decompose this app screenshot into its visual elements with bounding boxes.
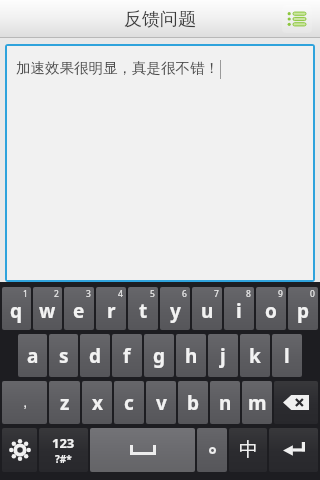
button[interactable]: 加速效果很明显，真是很不错！ bbox=[7, 46, 313, 280]
button[interactable]: h bbox=[176, 334, 206, 377]
staticText: 123 bbox=[52, 434, 75, 452]
staticText: 1 bbox=[23, 288, 28, 300]
button[interactable]: k bbox=[240, 334, 270, 377]
button[interactable]: 4 bbox=[96, 287, 126, 330]
staticText: g bbox=[153, 343, 166, 369]
button[interactable]: b bbox=[178, 381, 208, 424]
button[interactable]: 2 bbox=[33, 287, 62, 330]
staticText: 5 bbox=[150, 288, 155, 300]
staticText: h bbox=[185, 343, 198, 369]
button[interactable]: ， bbox=[2, 381, 47, 424]
button[interactable]: 5 bbox=[128, 287, 158, 330]
staticText: 4 bbox=[118, 288, 123, 300]
staticText: 3 bbox=[86, 288, 91, 300]
button[interactable]: v bbox=[146, 381, 176, 424]
button[interactable]: l bbox=[272, 334, 302, 377]
staticText: a bbox=[27, 343, 39, 369]
button[interactable]: c bbox=[114, 381, 144, 424]
button[interactable]: 8 bbox=[224, 287, 254, 330]
button[interactable]: x bbox=[82, 381, 112, 424]
button[interactable]: d bbox=[80, 334, 110, 377]
staticText: 0 bbox=[310, 288, 315, 300]
staticText: 8 bbox=[246, 288, 251, 300]
staticText: k bbox=[249, 343, 261, 369]
staticText: t bbox=[139, 298, 148, 324]
button[interactable]: 123 bbox=[39, 428, 88, 472]
button[interactable]: 列表 bbox=[282, 5, 312, 33]
staticText: m bbox=[248, 390, 267, 416]
staticText: 6 bbox=[182, 288, 187, 300]
staticText: o bbox=[265, 298, 277, 324]
staticText: n bbox=[219, 390, 232, 416]
staticText: i bbox=[236, 298, 242, 324]
staticText: p bbox=[297, 298, 310, 324]
button[interactable]: a bbox=[18, 334, 47, 377]
button[interactable]: 3 bbox=[64, 287, 94, 330]
button[interactable]: n bbox=[210, 381, 240, 424]
staticText: x bbox=[92, 390, 103, 416]
staticText: c bbox=[124, 390, 134, 416]
button[interactable]: Space bbox=[90, 428, 195, 472]
staticText: y bbox=[170, 298, 181, 324]
button[interactable]: 1 bbox=[2, 287, 31, 330]
staticText: v bbox=[156, 390, 167, 416]
staticText: q bbox=[10, 298, 23, 324]
button[interactable]: Backspace bbox=[274, 381, 318, 424]
button[interactable]: 0 bbox=[288, 287, 318, 330]
button[interactable]: 9 bbox=[256, 287, 286, 330]
staticText: l bbox=[284, 343, 290, 369]
button[interactable]: Enter bbox=[269, 428, 318, 472]
button[interactable]: j bbox=[208, 334, 238, 377]
staticText: 7 bbox=[214, 288, 219, 300]
button[interactable]: 7 bbox=[192, 287, 222, 330]
staticText: 中 bbox=[239, 438, 258, 462]
staticText: 加速效果很明显，真是很不错！ bbox=[16, 59, 219, 77]
staticText: f bbox=[123, 343, 131, 369]
staticText: r bbox=[107, 298, 116, 324]
staticText: ?#* bbox=[55, 452, 72, 466]
button[interactable]: z bbox=[49, 381, 80, 424]
button[interactable]: Settings bbox=[2, 428, 37, 472]
staticText: 2 bbox=[54, 288, 59, 300]
staticText: 反馈问题 bbox=[124, 8, 196, 31]
staticText: d bbox=[89, 343, 102, 369]
button[interactable]: g bbox=[144, 334, 174, 377]
staticText: j bbox=[220, 343, 226, 369]
staticText: b bbox=[187, 390, 200, 416]
button[interactable]: f bbox=[112, 334, 142, 377]
staticText: ， bbox=[19, 395, 31, 410]
staticText: e bbox=[73, 298, 85, 324]
staticText: z bbox=[60, 390, 70, 416]
staticText: u bbox=[201, 298, 214, 324]
button[interactable]: m bbox=[242, 381, 272, 424]
button[interactable]: s bbox=[49, 334, 78, 377]
staticText: s bbox=[59, 343, 69, 369]
staticText: 9 bbox=[278, 288, 283, 300]
staticText: w bbox=[39, 298, 56, 324]
button[interactable]: 6 bbox=[160, 287, 190, 330]
button[interactable]: 中 bbox=[229, 428, 267, 472]
button[interactable]: Period bbox=[197, 428, 227, 472]
